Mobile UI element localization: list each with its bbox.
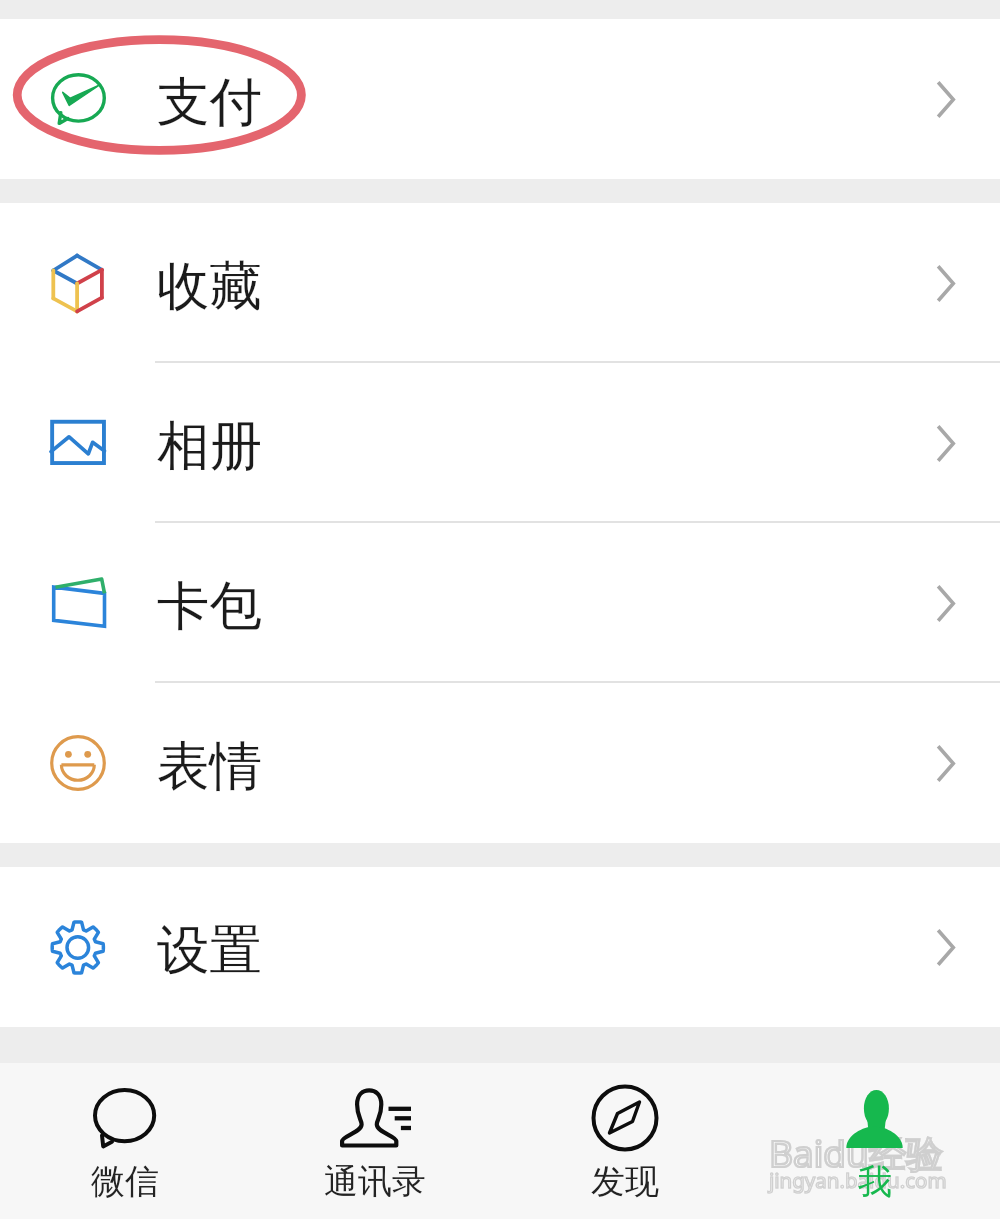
button[interactable]: 收藏 <box>0 203 1000 363</box>
button[interactable]: 设置 <box>0 867 1000 1027</box>
staticText: 发现 <box>591 1160 659 1203</box>
staticText: Baidu经验 <box>769 1127 943 1178</box>
staticText: 我 <box>858 1160 892 1203</box>
staticText: Baidu经验 <box>769 1127 943 1178</box>
staticText: 相册 <box>157 413 262 479</box>
staticText: jingyan.baidu.com <box>769 1166 947 1194</box>
button[interactable]: 支付 <box>0 19 1000 179</box>
button[interactable]: 卡包 <box>0 523 1000 683</box>
staticText: 设置 <box>157 917 262 983</box>
button[interactable]: Discover <box>500 1063 750 1219</box>
button[interactable]: Me <box>750 1063 1000 1219</box>
staticText: 卡包 <box>157 573 262 639</box>
button[interactable]: 相册 <box>0 363 1000 523</box>
staticText: 微信 <box>91 1160 159 1203</box>
staticText: 支付 <box>157 69 262 135</box>
staticText: 表情 <box>157 733 262 799</box>
button[interactable]: WeChat <box>0 1063 250 1219</box>
staticText: 通讯录 <box>324 1160 426 1203</box>
staticText: 收藏 <box>157 253 262 319</box>
button[interactable]: 表情 <box>0 683 1000 843</box>
button[interactable]: Contacts <box>250 1063 500 1219</box>
